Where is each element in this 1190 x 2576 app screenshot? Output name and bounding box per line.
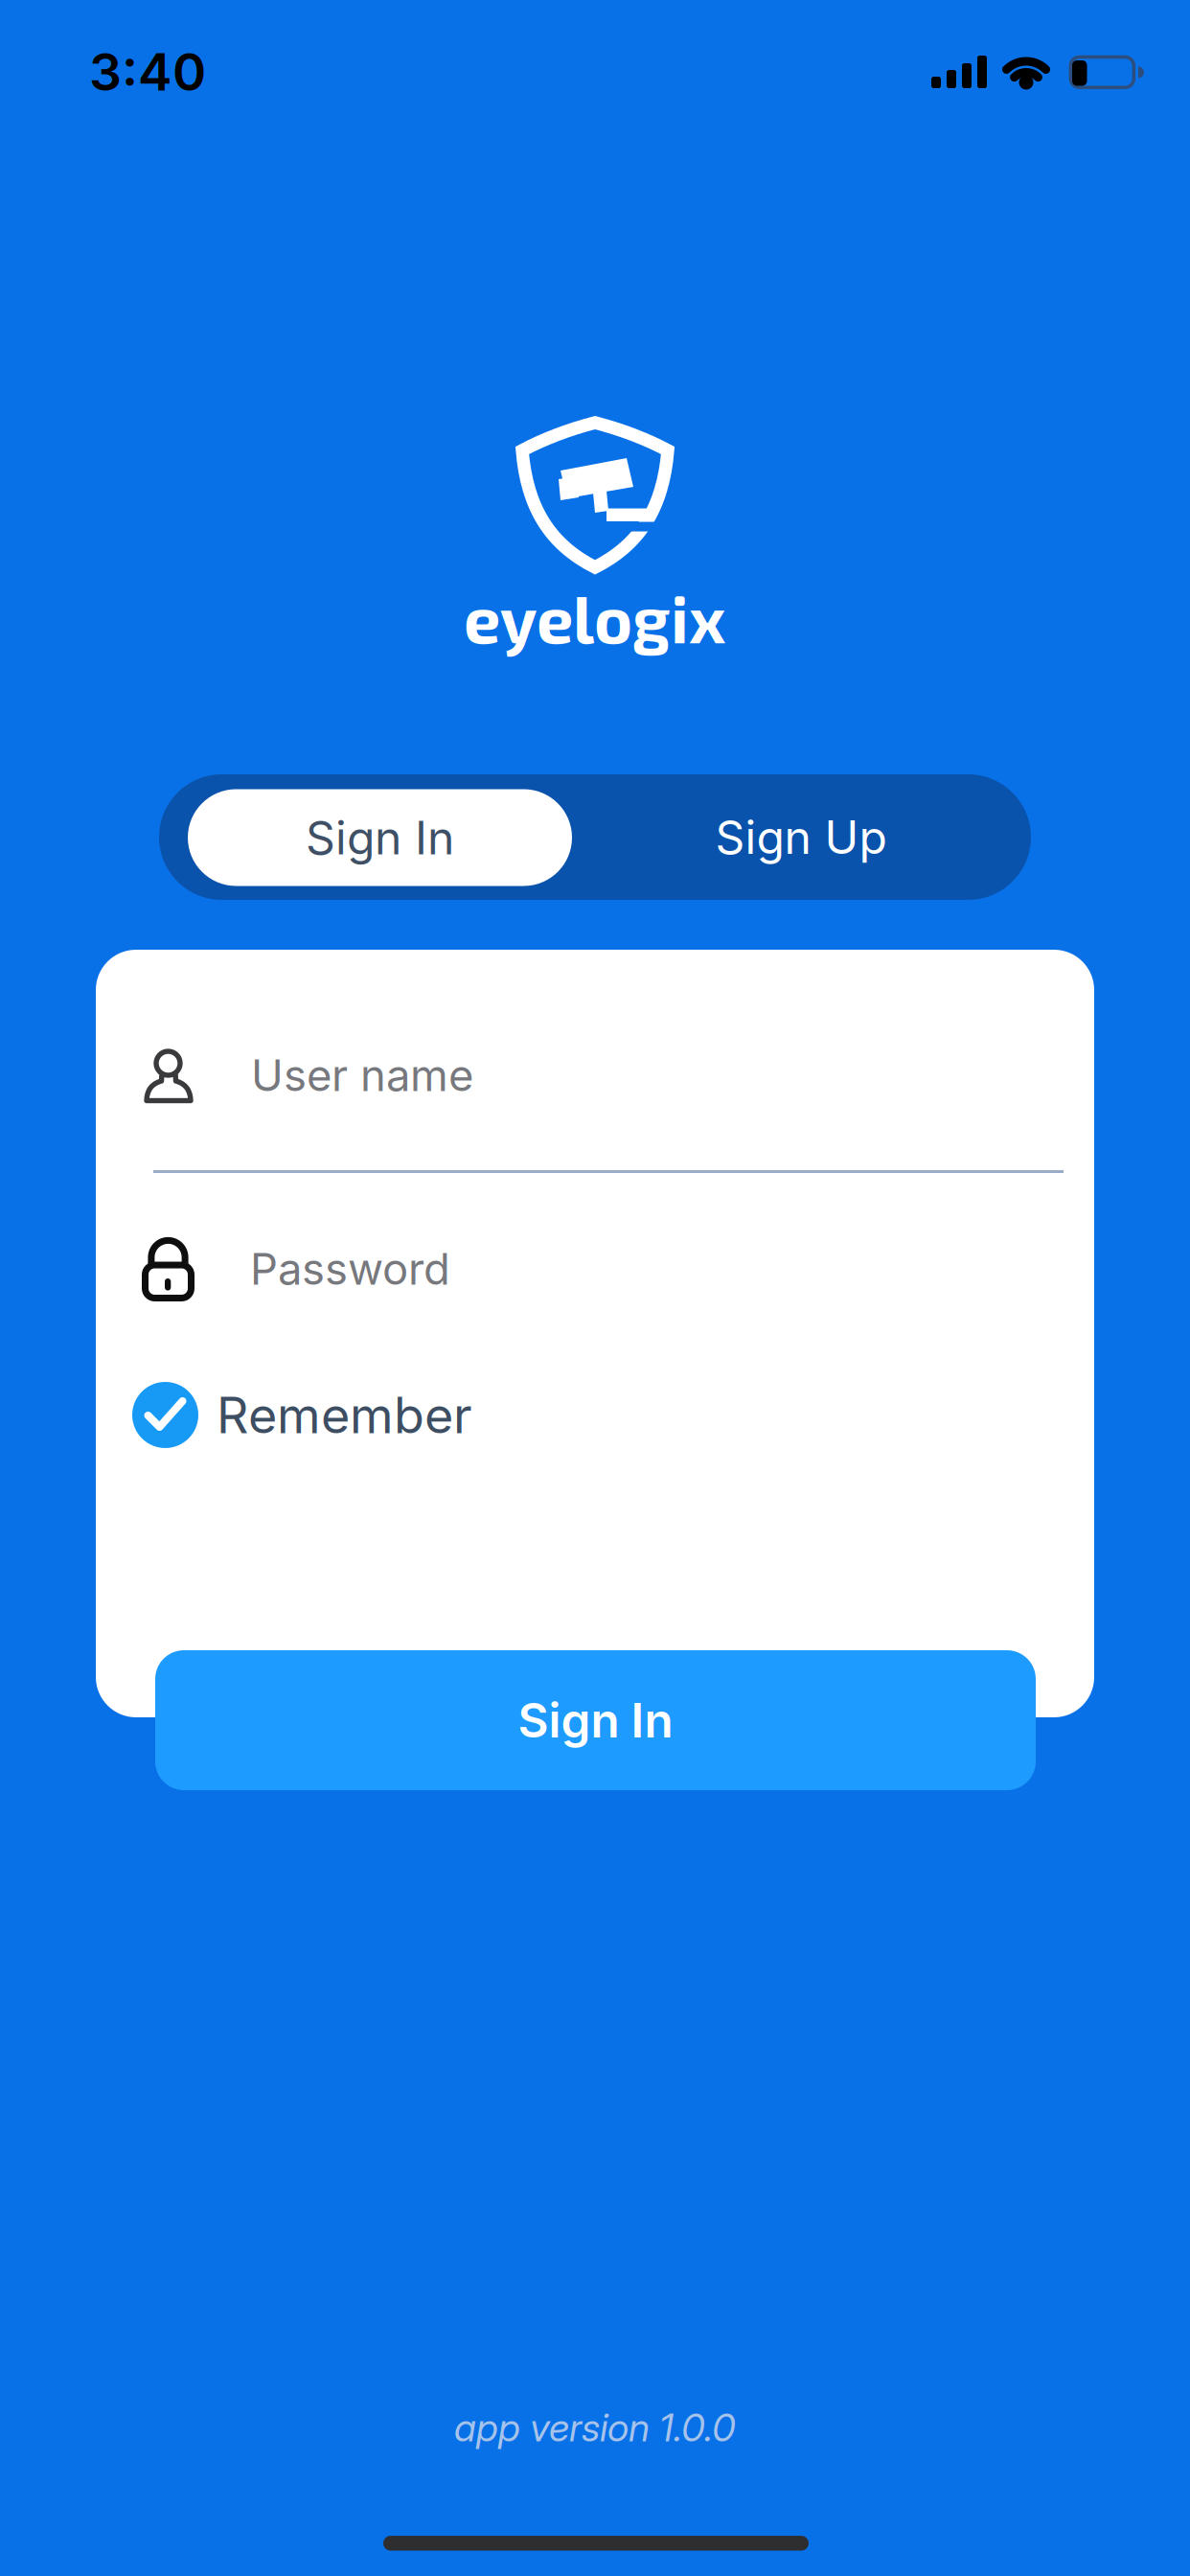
staticText: 3:40 bbox=[89, 42, 206, 102]
staticText: Sign Up bbox=[715, 810, 887, 864]
button[interactable]: Sign Up bbox=[600, 774, 1002, 900]
button[interactable]: Remember bbox=[132, 1382, 472, 1448]
staticText: Sign In bbox=[518, 1692, 673, 1748]
staticText: User name bbox=[251, 1050, 473, 1101]
button[interactable]: Sign In bbox=[155, 1650, 1036, 1790]
button[interactable]: User name bbox=[143, 1023, 1063, 1128]
button[interactable]: Password bbox=[142, 1216, 1062, 1322]
staticText: Remember bbox=[217, 1386, 472, 1444]
staticText: eyelogix bbox=[464, 578, 726, 656]
staticText: Password bbox=[250, 1243, 450, 1295]
staticText: app version 1.0.0 bbox=[454, 2405, 736, 2450]
button[interactable]: Sign In bbox=[188, 789, 572, 886]
staticText: Sign In bbox=[306, 810, 454, 865]
